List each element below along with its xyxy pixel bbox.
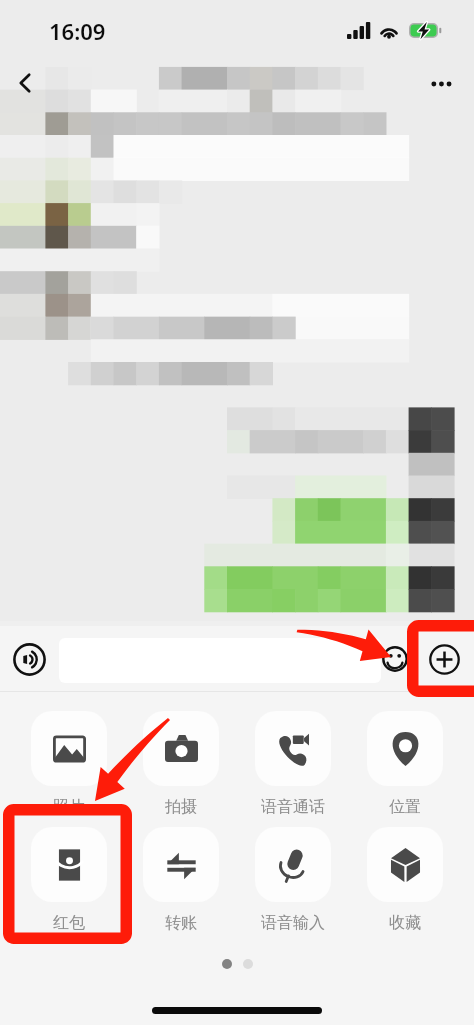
button[interactable]: 语音通话 <box>255 711 331 817</box>
button[interactable]: Emoji <box>380 644 410 674</box>
staticText: 拍摄 <box>165 797 197 817</box>
button[interactable]: More options <box>421 64 461 104</box>
staticText: 位置 <box>389 797 421 817</box>
staticText: 照片 <box>53 797 85 817</box>
button[interactable]: 红包 <box>31 827 107 933</box>
staticText: 红包 <box>53 913 85 933</box>
staticText: 语音通话 <box>261 797 325 817</box>
button[interactable]: Voice message <box>9 639 49 679</box>
button[interactable]: 转账 <box>143 827 219 933</box>
button[interactable]: 位置 <box>367 711 443 817</box>
staticText: 转账 <box>165 913 197 933</box>
button[interactable]: 照片 <box>31 711 107 817</box>
staticText: 语音输入 <box>261 913 325 933</box>
button[interactable]: 语音输入 <box>255 827 331 933</box>
button[interactable]: Back <box>5 63 45 103</box>
button[interactable]: 收藏 <box>367 827 443 933</box>
staticText: 16:09 <box>49 16 106 46</box>
button[interactable] <box>59 638 381 683</box>
button[interactable]: 拍摄 <box>143 711 219 817</box>
staticText: 收藏 <box>389 913 421 933</box>
button[interactable]: More functions <box>427 642 462 677</box>
